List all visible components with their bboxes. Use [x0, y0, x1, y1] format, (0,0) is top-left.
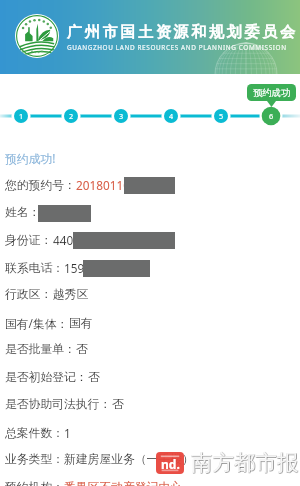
staticText: 南方都市报 — [192, 449, 300, 476]
staticText: 南方都市报 — [192, 450, 300, 477]
staticText: 4 — [169, 111, 174, 121]
staticText: 您的预约号： — [5, 178, 76, 193]
staticText: 440 — [53, 232, 74, 248]
staticText: 业务类型： — [5, 452, 64, 467]
staticText: 总案件数： — [5, 426, 64, 441]
staticText: 159 — [64, 260, 85, 276]
staticText: 否 — [88, 370, 100, 385]
staticText: 番禺区不动产登记中心 — [64, 480, 182, 486]
staticText: 1 — [19, 111, 24, 121]
staticText: 新建房屋业务（一手楼） — [64, 452, 194, 467]
staticText: 联系电话： — [5, 261, 64, 276]
button[interactable]: 预约成功 — [247, 84, 296, 101]
staticText: 国有/集体： — [5, 315, 69, 331]
staticText: 5 — [219, 111, 224, 121]
staticText: 南方都市报 — [191, 449, 299, 476]
staticText: 是否协助司法执行： — [5, 397, 112, 412]
staticText: 2 — [69, 111, 74, 121]
staticText: 1 — [64, 425, 71, 441]
staticText: 是否批量单： — [5, 342, 76, 357]
staticText: 南方都市报 — [191, 449, 299, 476]
staticText: 广州市国土资源和规划委员会 — [67, 23, 298, 42]
staticText: 越秀区 — [53, 287, 89, 302]
staticText: 国有 — [69, 316, 93, 331]
staticText: 南方都市报 — [191, 449, 299, 476]
staticText: GUANGZHOU LAND RESOURCES AND PLANNING CO… — [67, 43, 287, 52]
staticText: 姓名： — [5, 205, 41, 220]
staticText: 南方都市报 — [191, 450, 299, 477]
staticText: 身份证： — [5, 233, 53, 248]
staticText: 南方都市报 — [191, 450, 299, 477]
staticText: 南方都市报 — [192, 449, 300, 476]
staticText: 6 — [269, 111, 274, 121]
staticText: 预约成功! — [5, 150, 56, 166]
staticText: nd. — [161, 456, 180, 472]
staticText: 否 — [76, 342, 88, 357]
staticText: 南方都市报 — [191, 449, 299, 476]
staticText: 3 — [119, 111, 124, 121]
staticText: 是否初始登记： — [5, 370, 88, 385]
staticText: 否 — [112, 397, 124, 412]
staticText: 20180110 — [76, 177, 130, 193]
staticText: 预约成功 — [253, 87, 291, 99]
staticText: 预约机构： — [5, 480, 64, 486]
staticText: 行政区： — [5, 287, 53, 302]
